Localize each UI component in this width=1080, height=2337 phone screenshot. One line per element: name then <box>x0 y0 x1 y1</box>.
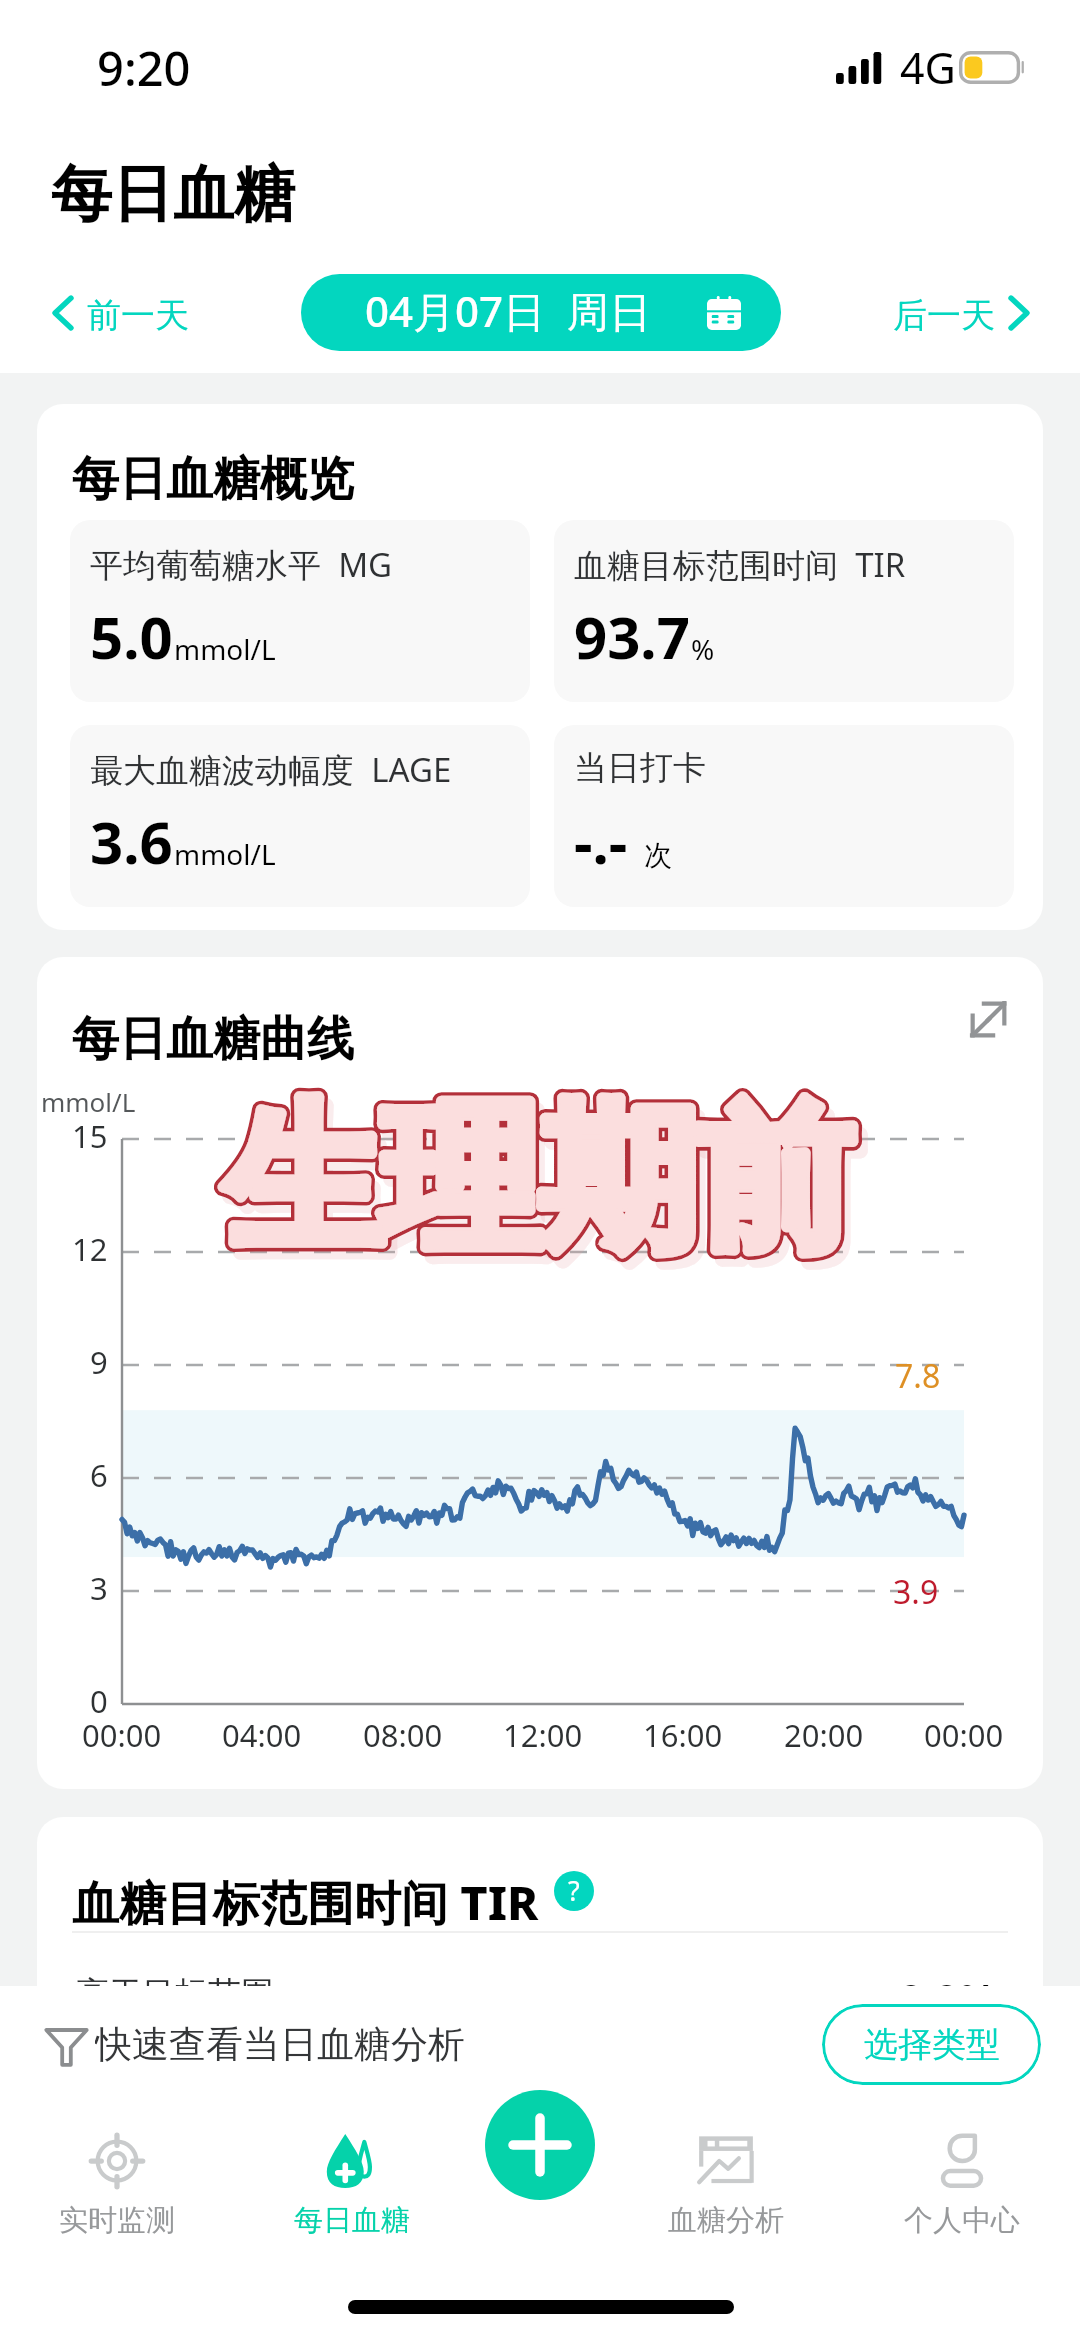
staticText: 选择类型 <box>864 2023 1000 2066</box>
staticText: 高于目标范围 <box>76 1973 274 2015</box>
staticText: 00:00 <box>82 1714 162 1756</box>
staticText: 次 <box>644 838 672 873</box>
staticText: 5.0 <box>90 597 173 676</box>
staticText: -.- <box>574 802 643 881</box>
staticText: 后一天 <box>893 294 995 332</box>
button[interactable]: Add record <box>485 2090 595 2200</box>
staticText: 6 <box>90 1454 108 1496</box>
staticText: 血糖目标范围时间 TIR <box>72 1870 539 1934</box>
button[interactable]: 平均葡萄糖水平 MG <box>70 520 530 702</box>
staticText: 血糖目标范围时间 TIR <box>574 542 906 587</box>
button[interactable]: 实时监测 <box>32 2120 202 2265</box>
button[interactable]: Help <box>554 1871 594 1911</box>
staticText: 4G <box>900 38 956 97</box>
button[interactable]: 选择类型 <box>822 2004 1041 2085</box>
staticText: 实时监测 <box>59 2202 175 2239</box>
staticText: 16:00 <box>643 1714 723 1756</box>
button[interactable]: 血糖分析 <box>641 2120 811 2265</box>
staticText: 每日血糖 <box>294 2202 410 2239</box>
staticText: 3 <box>90 1567 108 1609</box>
staticText: 7.8 <box>895 1354 941 1398</box>
staticText: 生理期前 <box>225 1082 853 1280</box>
staticText: 3.9 <box>893 1570 939 1614</box>
button[interactable]: 04月07日 周日 <box>301 274 781 351</box>
staticText: % <box>691 630 715 668</box>
staticText: ? <box>568 1872 580 1909</box>
staticText: 93.7 <box>574 597 690 676</box>
staticText: 每日血糖 <box>51 156 295 233</box>
button[interactable]: 前一天 <box>52 294 189 332</box>
staticText: 血糖分析 <box>668 2202 784 2239</box>
staticText: 9:20 <box>97 36 191 100</box>
button[interactable]: 每日血糖 <box>267 2120 437 2265</box>
staticText: mmol/L <box>174 630 276 668</box>
staticText: 0.0% <box>899 1970 997 2027</box>
staticText: 15 <box>72 1115 108 1157</box>
staticText: 个人中心 <box>904 2202 1020 2239</box>
staticText: 每日血糖曲线 <box>72 1010 354 1069</box>
button[interactable]: Expand chart <box>958 987 1018 1047</box>
staticText: 当日打卡 <box>574 747 706 789</box>
staticText: mmol/L <box>41 1084 136 1119</box>
staticText: mmol/L <box>174 835 276 873</box>
staticText: 最大血糖波动幅度 LAGE <box>90 747 452 792</box>
staticText: 3.6 <box>90 802 173 881</box>
staticText: 08:00 <box>363 1714 443 1756</box>
button[interactable]: 个人中心 <box>877 2120 1047 2265</box>
staticText: 04月07日 周日 <box>365 282 651 339</box>
staticText: 12 <box>72 1228 108 1270</box>
staticText: 12:00 <box>503 1714 583 1756</box>
staticText: 快速查看当日血糖分析 <box>95 2021 465 2065</box>
staticText: 0 <box>90 1680 108 1722</box>
button[interactable]: 当日打卡 <box>554 725 1014 907</box>
staticText: 生理期前 <box>225 1082 853 1280</box>
staticText: 每日血糖概览 <box>72 450 354 509</box>
button[interactable]: 快速查看当日血糖分析 <box>45 2024 465 2068</box>
staticText: 前一天 <box>87 294 189 332</box>
staticText: 20:00 <box>784 1714 864 1756</box>
button[interactable]: 血糖目标范围时间 TIR <box>554 520 1014 702</box>
staticText: 平均葡萄糖水平 MG <box>90 542 393 587</box>
staticText: 生理期前 <box>225 1082 853 1280</box>
staticText: 9 <box>90 1341 108 1383</box>
button[interactable]: 最大血糖波动幅度 LAGE <box>70 725 530 907</box>
staticText: 00:00 <box>924 1714 1004 1756</box>
staticText: 04:00 <box>222 1714 302 1756</box>
staticText: 生理期前 <box>232 1091 860 1289</box>
button[interactable]: 后一天 <box>893 294 1030 332</box>
